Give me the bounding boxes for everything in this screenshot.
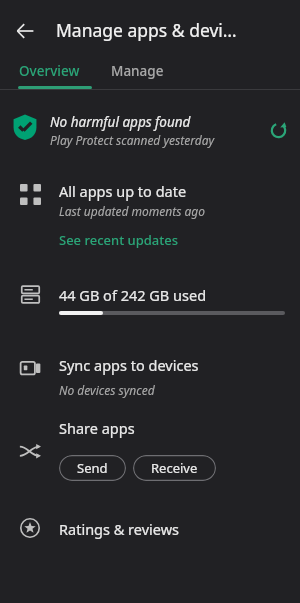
staticText: All apps up to date: [59, 181, 187, 201]
staticText: 44 GB of 242 GB used: [59, 285, 207, 305]
button[interactable]: [0, 100, 300, 158]
staticText: See recent updates: [59, 231, 178, 249]
staticText: Send: [77, 459, 108, 477]
staticText: Manage apps & devi…: [56, 18, 237, 42]
button[interactable]: [0, 172, 300, 224]
staticText: Share apps: [59, 418, 135, 438]
staticText: Last updated moments ago: [59, 203, 206, 219]
button[interactable]: [0, 346, 300, 398]
staticText: Play Protect scanned yesterday: [50, 132, 215, 148]
button[interactable]: [0, 506, 300, 550]
staticText: Receive: [151, 459, 198, 477]
staticText: Manage: [111, 62, 164, 80]
staticText: No harmful apps found: [50, 113, 191, 131]
button[interactable]: Overview: [14, 54, 85, 88]
button[interactable]: Receive: [133, 455, 216, 481]
button[interactable]: [0, 276, 300, 326]
button[interactable]: Send: [59, 455, 126, 481]
staticText: Overview: [19, 62, 80, 80]
button[interactable]: Refresh: [262, 114, 294, 146]
staticText: Ratings & reviews: [59, 519, 180, 539]
button[interactable]: Manage: [106, 54, 169, 88]
button[interactable]: See recent updates: [55, 228, 182, 252]
button[interactable]: Back: [8, 14, 42, 48]
staticText: Sync apps to devices: [59, 355, 199, 375]
staticText: No devices synced: [59, 382, 155, 398]
